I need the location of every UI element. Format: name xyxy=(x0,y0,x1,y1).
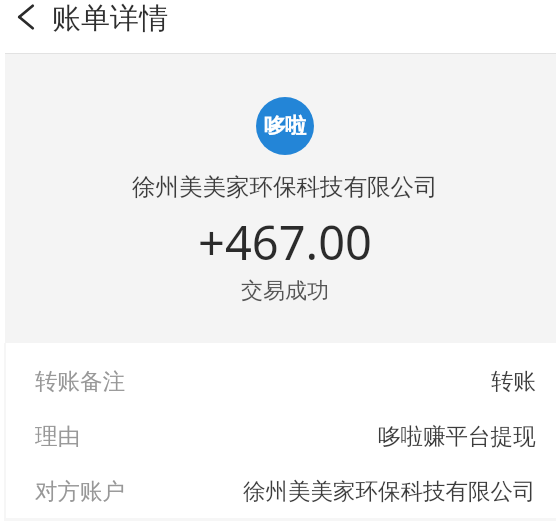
staticText: 账单详情 xyxy=(52,0,168,37)
button[interactable]: Back xyxy=(2,0,50,41)
staticText: 理由 xyxy=(35,422,80,450)
staticText: 转账 xyxy=(491,367,536,395)
staticText: +467.00 xyxy=(198,210,372,274)
staticText: 交易成功 xyxy=(241,277,329,305)
staticText: 转账备注 xyxy=(35,367,125,395)
staticText: 哆啦赚平台提现 xyxy=(378,422,536,450)
staticText: 徐州美美家环保科技有限公司 xyxy=(132,172,438,202)
staticText: 对方账户 xyxy=(35,477,125,505)
button[interactable]: 转账备注 xyxy=(6,353,556,408)
button[interactable]: 对方账户 xyxy=(6,463,556,518)
staticText: 哆啦 xyxy=(264,113,306,139)
button[interactable]: Merchant avatar xyxy=(256,97,314,155)
button[interactable]: 理由 xyxy=(6,408,556,463)
staticText: 徐州美美家环保科技有限公司 xyxy=(243,477,536,505)
